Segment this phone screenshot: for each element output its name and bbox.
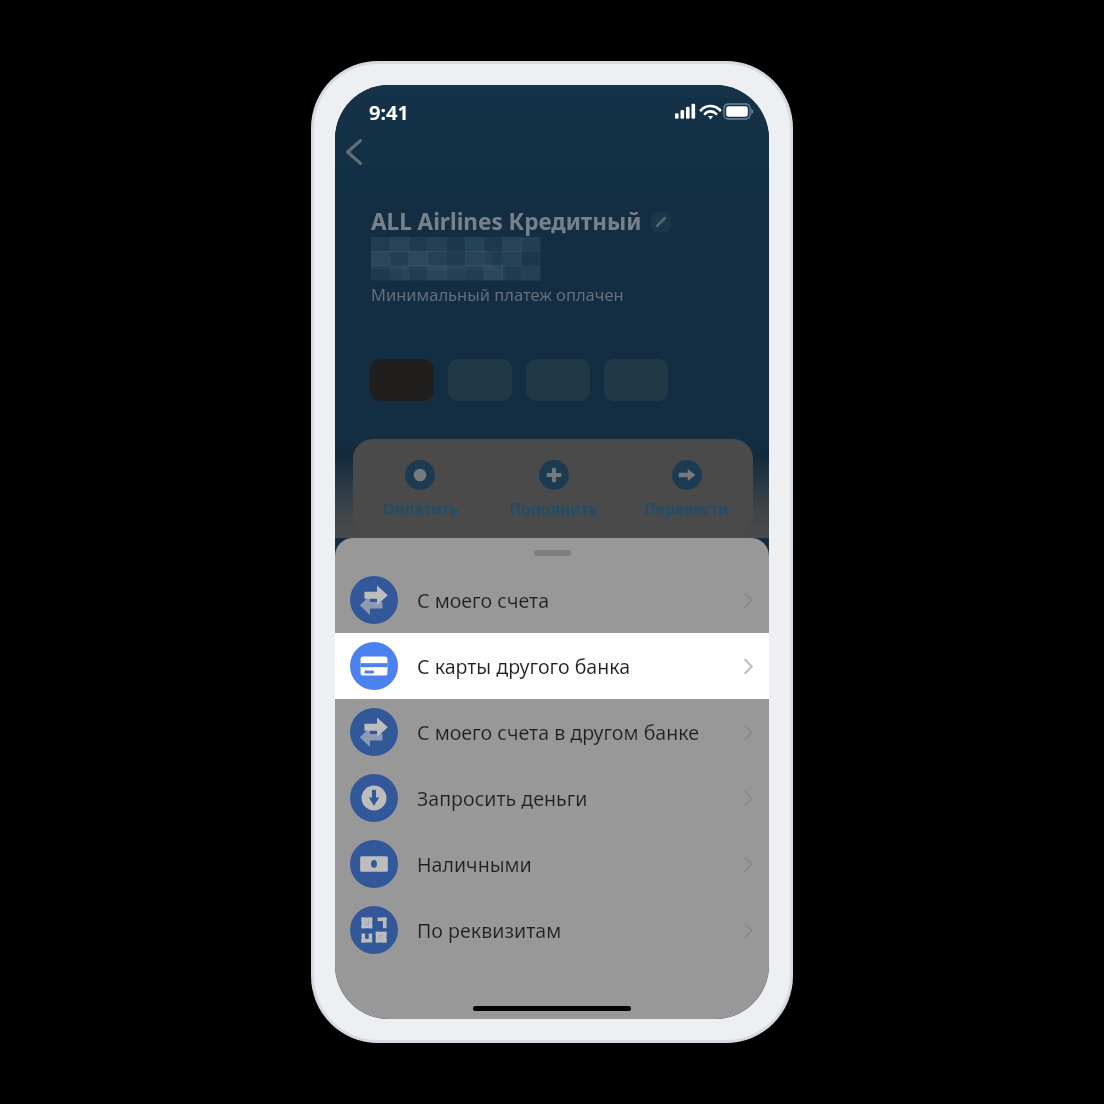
staticText: С моего счета в другом банке — [417, 719, 700, 746]
button[interactable]: Оплатить — [353, 439, 487, 534]
staticText: С карты другого банка — [417, 653, 631, 680]
staticText: Минимальный платеж оплачен — [371, 283, 624, 305]
button[interactable]: С карты другого банка — [335, 633, 769, 699]
button[interactable]: С моего счета в другом банке — [335, 699, 769, 765]
button[interactable]: С моего счета — [335, 567, 769, 633]
staticText: Наличными — [417, 851, 532, 878]
button[interactable]: Back — [335, 114, 387, 189]
button[interactable]: Перевести — [620, 439, 753, 534]
staticText: Перевести — [644, 498, 729, 519]
button[interactable]: Пополнить — [487, 439, 620, 534]
button[interactable]: Запросить деньги — [335, 765, 769, 831]
staticText: Оплатить — [382, 498, 459, 519]
button[interactable]: Edit card name — [651, 212, 671, 232]
button[interactable]: По реквизитам — [335, 897, 769, 963]
button[interactable]: Наличными — [335, 831, 769, 897]
staticText: С моего счета — [417, 587, 550, 614]
staticText: ALL Airlines Кредитный — [371, 206, 642, 237]
staticText: Пополнить — [509, 498, 598, 519]
staticText: По реквизитам — [417, 917, 562, 944]
staticText: Запросить деньги — [417, 785, 588, 812]
staticText: 9:41 — [369, 99, 409, 126]
button[interactable]: Card option 1 — [370, 359, 434, 401]
